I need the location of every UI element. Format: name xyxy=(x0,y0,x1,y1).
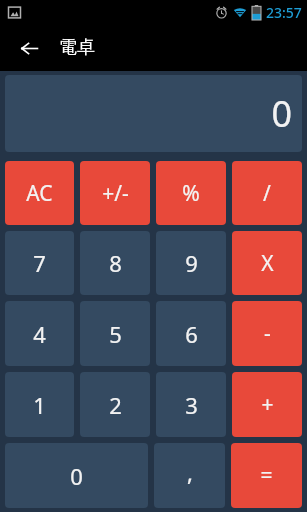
button[interactable]: X xyxy=(232,231,302,295)
staticText: / xyxy=(263,179,271,208)
staticText: 9 xyxy=(185,248,198,278)
staticText: 7 xyxy=(33,248,46,278)
button[interactable]: % xyxy=(156,161,226,225)
staticText: 2 xyxy=(109,390,122,420)
button[interactable]: 5 xyxy=(80,301,150,366)
button[interactable]: 7 xyxy=(5,231,74,295)
staticText: 6 xyxy=(185,319,198,349)
button[interactable]: 1 xyxy=(5,372,74,437)
button[interactable]: Back xyxy=(14,33,44,63)
staticText: X xyxy=(261,249,274,278)
button[interactable]: 0 xyxy=(5,443,148,508)
staticText: 8 xyxy=(109,248,122,278)
staticText: 3 xyxy=(185,390,198,420)
staticText: % xyxy=(182,179,200,208)
staticText: , xyxy=(187,457,193,487)
staticText: AC xyxy=(26,179,53,208)
staticText: 1 xyxy=(33,390,46,420)
button[interactable]: AC xyxy=(5,161,74,225)
staticText: 0 xyxy=(271,89,292,138)
staticText: 0 xyxy=(70,461,83,491)
staticText: 4 xyxy=(33,319,46,349)
button[interactable]: 4 xyxy=(5,301,74,366)
staticText: = xyxy=(260,461,273,490)
button[interactable]: = xyxy=(231,443,302,508)
button[interactable]: 2 xyxy=(80,372,150,437)
staticText: 23:57 xyxy=(266,3,302,22)
staticText: 5 xyxy=(109,319,122,349)
button[interactable]: / xyxy=(232,161,302,225)
button[interactable]: - xyxy=(232,301,302,366)
staticText: - xyxy=(264,319,271,348)
button[interactable]: +/- xyxy=(80,161,150,225)
button[interactable]: 9 xyxy=(156,231,226,295)
button[interactable]: 3 xyxy=(156,372,226,437)
button[interactable]: 8 xyxy=(80,231,150,295)
staticText: 電卓 xyxy=(59,36,95,59)
button[interactable]: , xyxy=(154,443,225,508)
staticText: + xyxy=(261,390,274,419)
button[interactable]: + xyxy=(232,372,302,437)
button[interactable]: 6 xyxy=(156,301,226,366)
staticText: +/- xyxy=(102,179,129,208)
